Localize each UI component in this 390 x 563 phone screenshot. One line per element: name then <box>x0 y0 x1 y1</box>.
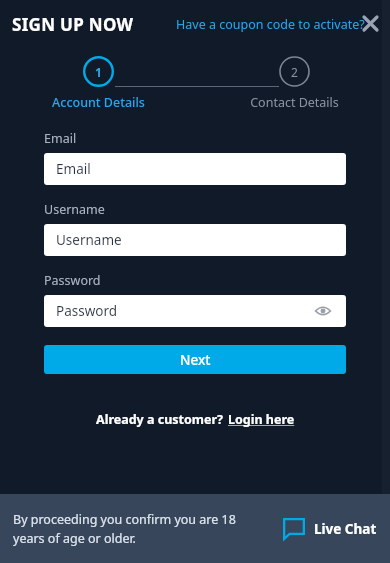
staticText: Live Chat <box>314 520 377 538</box>
staticText: Email <box>56 160 91 178</box>
staticText: Username <box>44 201 105 218</box>
staticText: Contact Details <box>250 94 339 111</box>
staticText: Email <box>44 130 77 147</box>
staticText: Already a customer? <box>96 411 223 428</box>
staticText: By proceeding you confirm you are 18 yea… <box>13 511 263 547</box>
button[interactable]: Next <box>44 345 346 374</box>
button[interactable]: Email <box>44 153 346 185</box>
button[interactable]: Password <box>44 295 346 327</box>
button[interactable]: Close <box>356 9 384 37</box>
button[interactable]: Show password <box>312 300 334 322</box>
button[interactable]: Username <box>44 224 346 256</box>
button[interactable]: Have a coupon code to activate? <box>174 12 367 37</box>
button[interactable]: 1 <box>44 56 152 111</box>
button[interactable]: Login here <box>228 409 295 430</box>
staticText: 2 <box>291 64 298 80</box>
staticText: Have a coupon code to activate? <box>176 16 365 33</box>
button[interactable]: Live Chat <box>283 512 377 546</box>
staticText: Password <box>44 272 101 289</box>
staticText: Password <box>56 302 118 320</box>
staticText: Login here <box>228 411 295 428</box>
staticText: Username <box>56 231 122 249</box>
staticText: Next <box>180 351 211 369</box>
button[interactable]: 2 <box>240 56 348 111</box>
staticText: SIGN UP NOW <box>12 13 134 36</box>
staticText: 1 <box>95 64 102 80</box>
staticText: Account Details <box>52 94 145 111</box>
